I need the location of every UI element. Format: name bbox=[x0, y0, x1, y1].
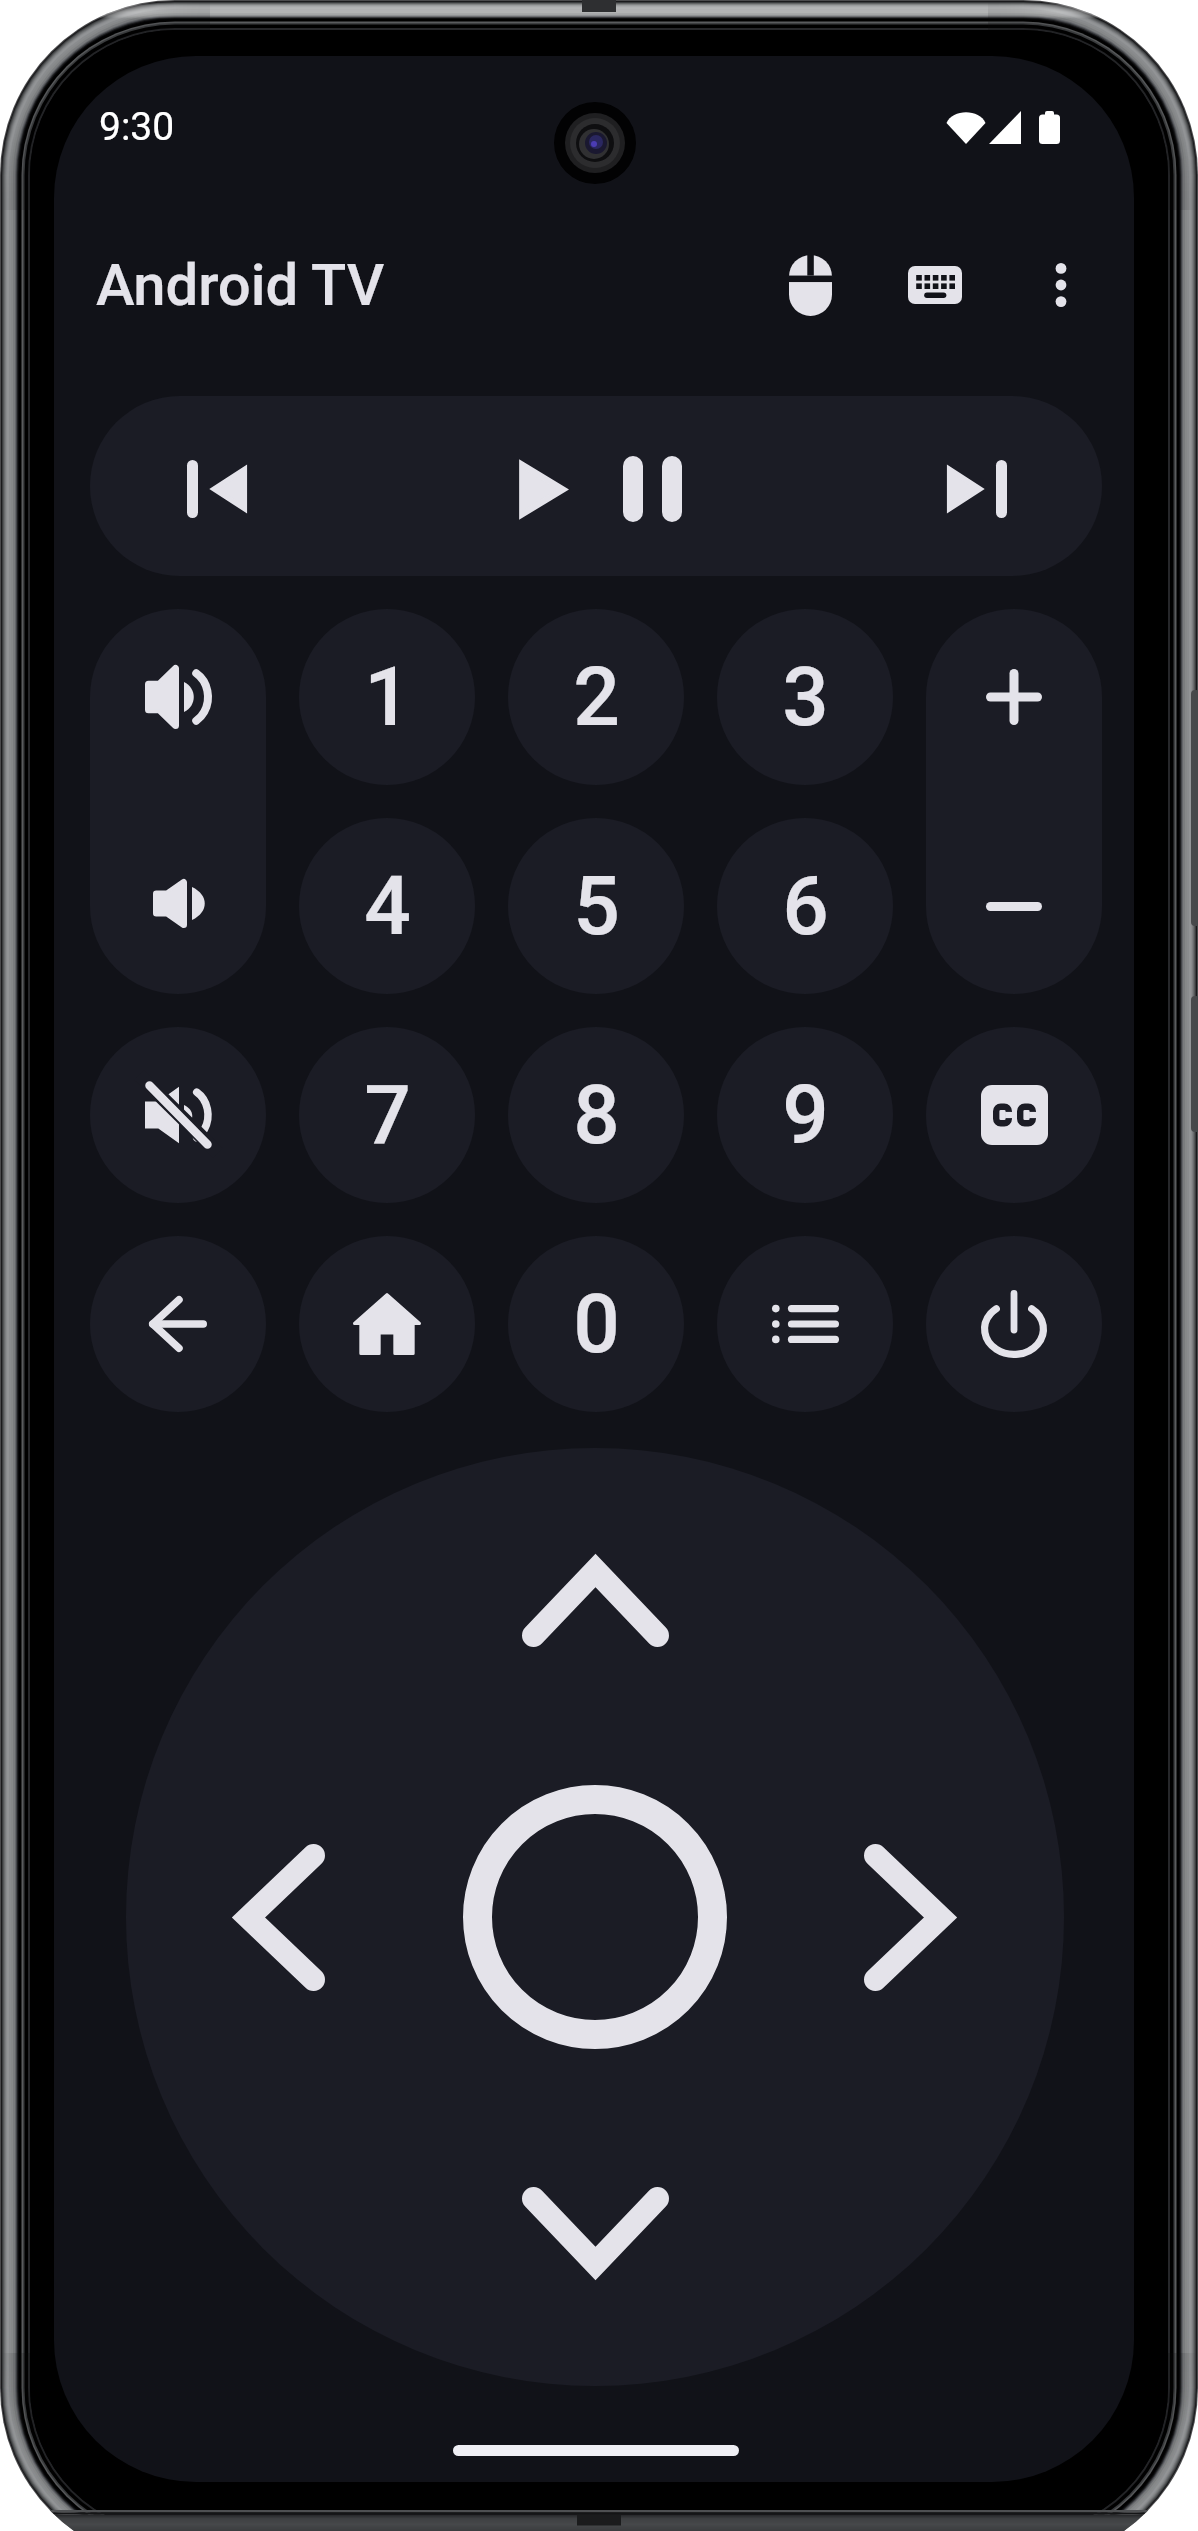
staticText: 5 bbox=[573, 858, 620, 954]
button[interactable]: 7 bbox=[299, 1027, 475, 1203]
button[interactable]: Menu bbox=[717, 1236, 893, 1412]
button[interactable]: Pause bbox=[564, 401, 740, 577]
staticText: 0 bbox=[573, 1276, 620, 1372]
staticText: 6 bbox=[782, 858, 829, 954]
staticText: 2 bbox=[573, 649, 620, 745]
button[interactable]: 4 bbox=[299, 818, 475, 994]
button[interactable]: 1 bbox=[299, 609, 475, 785]
button[interactable]: Volume down bbox=[90, 815, 266, 991]
button[interactable]: 9 bbox=[717, 1027, 893, 1203]
button[interactable]: Play bbox=[456, 401, 632, 577]
button[interactable]: Next bbox=[889, 401, 1065, 577]
staticText: 3 bbox=[782, 649, 829, 745]
button[interactable]: Right bbox=[793, 1802, 1023, 2032]
button[interactable]: Volume up bbox=[90, 609, 266, 785]
staticText: 8 bbox=[573, 1067, 620, 1163]
button[interactable]: Keyboard bbox=[887, 237, 983, 333]
button[interactable]: 8 bbox=[508, 1027, 684, 1203]
button[interactable]: Back bbox=[90, 1236, 266, 1412]
button[interactable]: More options bbox=[1013, 237, 1109, 333]
button[interactable]: 0 bbox=[508, 1236, 684, 1412]
button[interactable]: Closed captions bbox=[926, 1027, 1102, 1203]
button[interactable]: 5 bbox=[508, 818, 684, 994]
button[interactable]: Channel up bbox=[926, 609, 1102, 785]
staticText: Android TV bbox=[96, 251, 385, 319]
staticText: 7 bbox=[364, 1067, 411, 1163]
button[interactable]: Up bbox=[480, 1488, 710, 1718]
button[interactable]: Select bbox=[450, 1772, 740, 2062]
button[interactable]: Power bbox=[926, 1236, 1102, 1412]
button[interactable]: 6 bbox=[717, 818, 893, 994]
staticText: 9 bbox=[782, 1067, 829, 1163]
button[interactable]: Home bbox=[299, 1236, 475, 1412]
button[interactable]: Touchpad bbox=[762, 237, 858, 333]
button[interactable]: Channel down bbox=[926, 818, 1102, 994]
staticText: 9:30 bbox=[99, 104, 175, 150]
staticText: 4 bbox=[364, 858, 411, 954]
button[interactable]: Down bbox=[480, 2116, 710, 2346]
button[interactable]: Left bbox=[166, 1802, 396, 2032]
button[interactable]: 2 bbox=[508, 609, 684, 785]
button[interactable]: Mute bbox=[90, 1027, 266, 1203]
button[interactable]: 3 bbox=[717, 609, 893, 785]
staticText: 1 bbox=[364, 649, 411, 745]
button[interactable]: Previous bbox=[129, 401, 305, 577]
